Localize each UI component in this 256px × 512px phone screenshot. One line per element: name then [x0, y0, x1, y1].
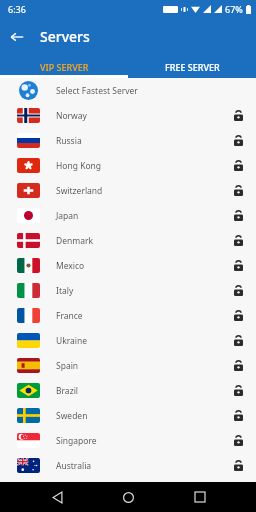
staticText: Brazil [56, 385, 220, 397]
button[interactable]: Select Fastest Server [0, 78, 256, 103]
staticText: Servers [40, 27, 90, 46]
staticText: 6:36 [8, 3, 26, 15]
button[interactable]: Sweden [0, 403, 256, 428]
staticText: Spain [56, 360, 220, 372]
staticText: Ukraine [56, 335, 220, 347]
button[interactable]: France [0, 303, 256, 328]
button[interactable]: Hong Kong [0, 153, 256, 178]
button[interactable]: Recents [185, 482, 215, 512]
button[interactable]: Denmark [0, 228, 256, 253]
staticText: Switzerland [56, 185, 220, 197]
button[interactable]: FREE SERVER [128, 55, 256, 78]
staticText: Hong Kong [56, 160, 220, 172]
button[interactable]: VIP SERVER [0, 55, 128, 78]
staticText: Norway [56, 110, 220, 122]
staticText: Singapore [56, 435, 220, 447]
staticText: Denmark [56, 235, 220, 247]
staticText: 67% [225, 3, 243, 15]
button[interactable]: Australia [0, 453, 256, 478]
staticText: FREE SERVER [165, 61, 220, 73]
button[interactable]: Brazil [0, 378, 256, 403]
staticText: Sweden [56, 410, 220, 422]
button[interactable]: Japan [0, 203, 256, 228]
staticText: VIP SERVER [40, 61, 89, 73]
staticText: Japan [56, 210, 220, 222]
button[interactable]: Singapore [0, 428, 256, 453]
button[interactable]: Switzerland [0, 178, 256, 203]
staticText: Mexico [56, 260, 220, 272]
staticText: Select Fastest Server [56, 85, 220, 97]
button[interactable]: Russia [0, 128, 256, 153]
button[interactable]: Home [113, 482, 143, 512]
button[interactable]: Spain [0, 353, 256, 378]
staticText: Australia [56, 460, 220, 472]
button[interactable]: Mexico [0, 253, 256, 278]
button[interactable]: Italy [0, 278, 256, 303]
staticText: Russia [56, 135, 220, 147]
staticText: Italy [56, 285, 220, 297]
button[interactable]: Back [42, 482, 72, 512]
staticText: France [56, 310, 220, 322]
button[interactable]: Back [0, 20, 34, 54]
button[interactable]: Norway [0, 103, 256, 128]
button[interactable]: Ukraine [0, 328, 256, 353]
